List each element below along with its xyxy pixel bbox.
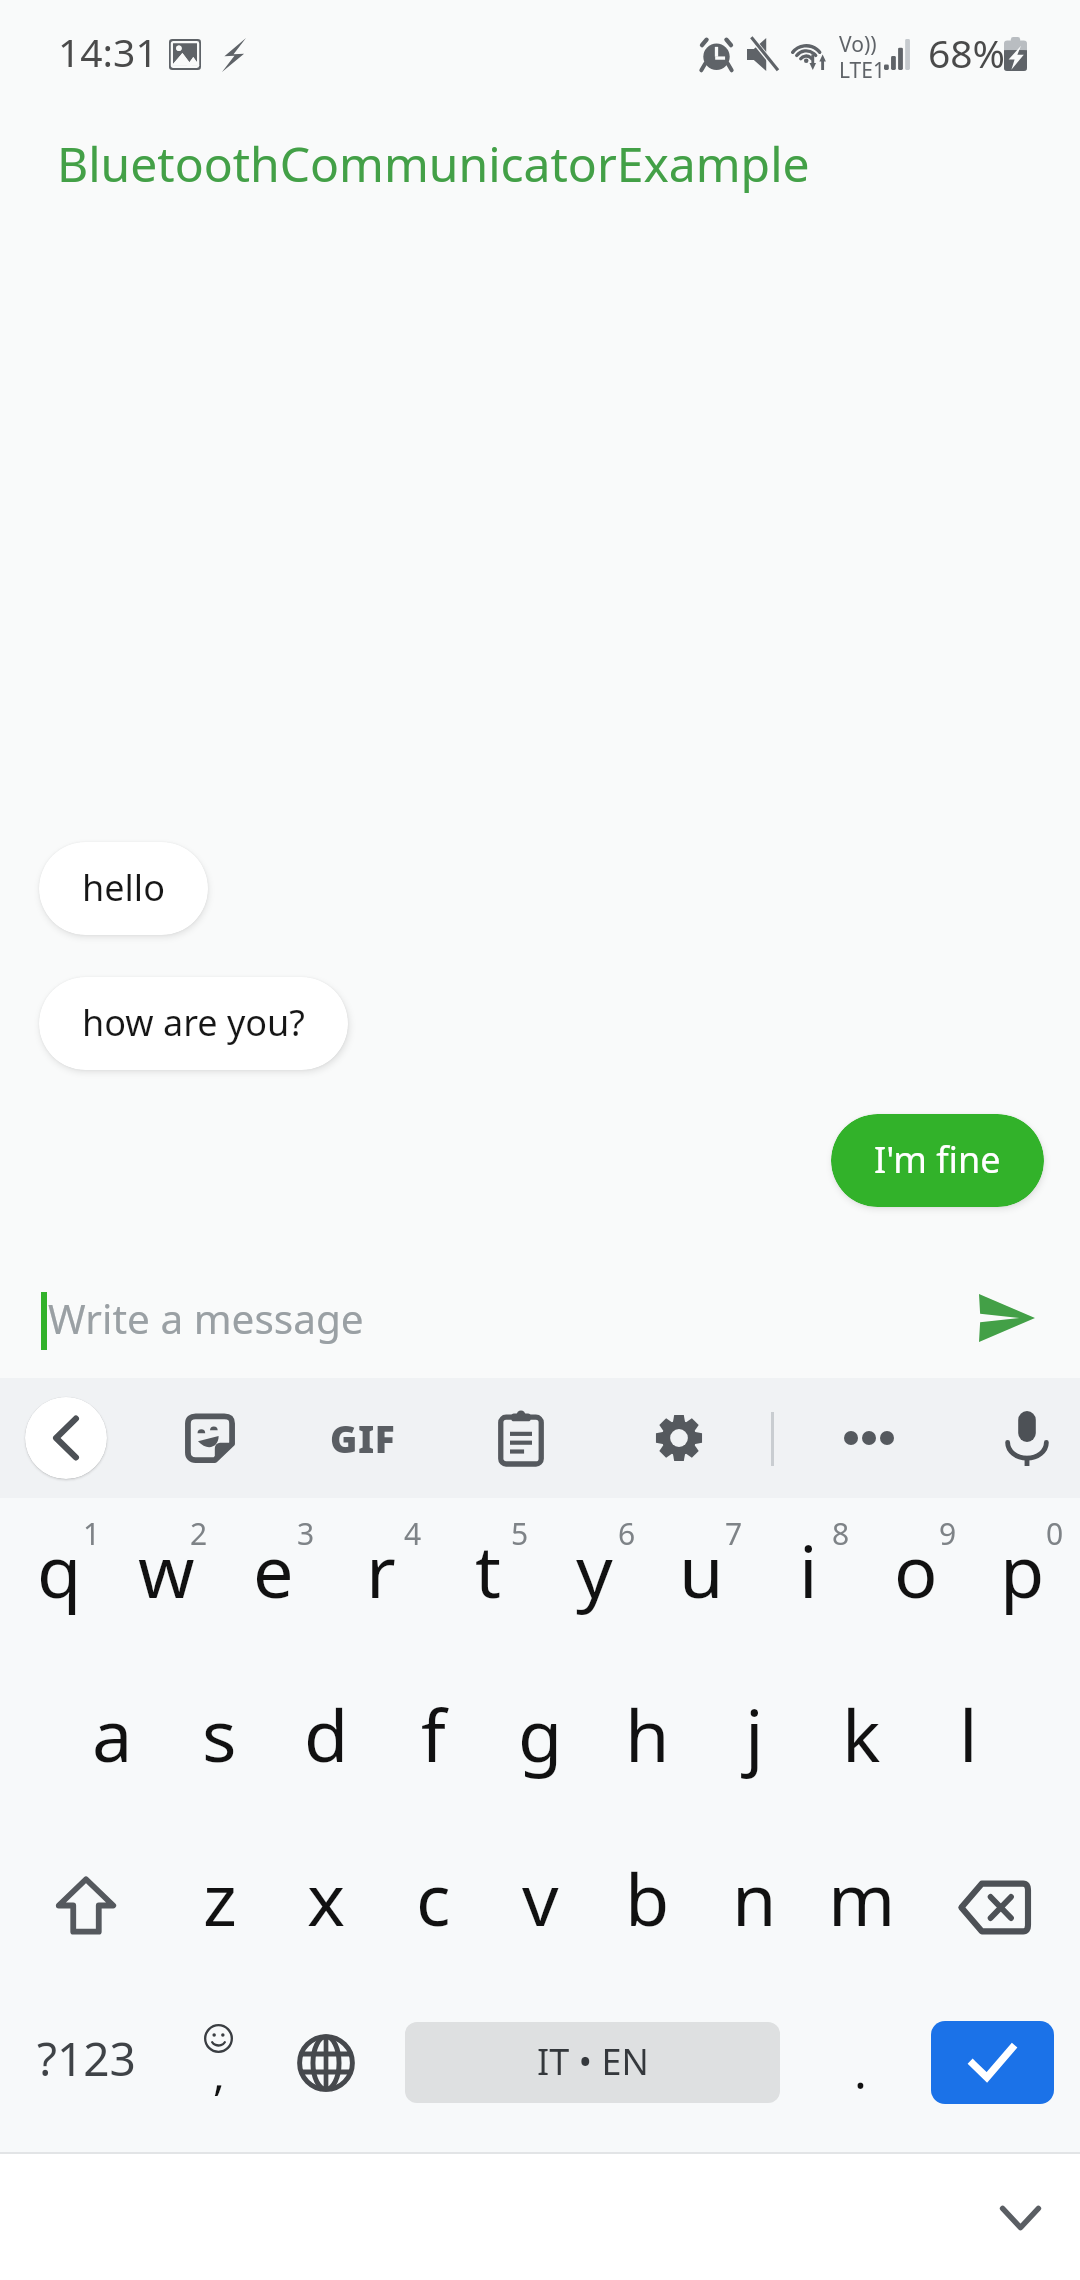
staticText: c bbox=[416, 1849, 451, 1947]
staticText: 8 bbox=[832, 1513, 850, 1554]
button[interactable]: ?123 bbox=[6, 1990, 166, 2154]
button[interactable]: h bbox=[594, 1662, 701, 1826]
button[interactable]: I'm fine bbox=[831, 1114, 1044, 1207]
button[interactable]: t bbox=[434, 1498, 541, 1662]
staticText: l bbox=[959, 1685, 978, 1783]
staticText: 3 bbox=[297, 1513, 315, 1554]
button[interactable]: . bbox=[800, 1990, 920, 2154]
button[interactable]: k bbox=[808, 1662, 915, 1826]
button[interactable]: x bbox=[273, 1826, 380, 1990]
staticText: s bbox=[202, 1685, 237, 1783]
button[interactable]: j bbox=[701, 1662, 808, 1826]
staticText: m bbox=[828, 1849, 896, 1947]
button[interactable]: IT • EN bbox=[405, 2022, 780, 2103]
staticText: 4 bbox=[404, 1513, 422, 1554]
button[interactable]: z bbox=[166, 1826, 273, 1990]
button[interactable]: s bbox=[166, 1662, 273, 1826]
button[interactable]: Settings bbox=[631, 1390, 727, 1486]
staticText: i bbox=[799, 1521, 818, 1619]
button[interactable]: , bbox=[166, 1990, 266, 2154]
button[interactable]: GIF bbox=[315, 1390, 411, 1486]
staticText: 6 bbox=[618, 1513, 636, 1554]
button[interactable]: l bbox=[915, 1662, 1022, 1826]
button[interactable]: Backspace bbox=[914, 1826, 1074, 1990]
staticText: u bbox=[679, 1521, 724, 1619]
staticText: 68% bbox=[928, 26, 1006, 79]
staticText: z bbox=[203, 1849, 237, 1947]
button[interactable]: Back bbox=[25, 1397, 107, 1479]
staticText: IT • EN bbox=[537, 2037, 649, 2086]
button[interactable]: Shift bbox=[6, 1826, 166, 1990]
staticText: x bbox=[307, 1849, 346, 1947]
staticText: a bbox=[92, 1685, 133, 1783]
button[interactable]: b bbox=[594, 1826, 701, 1990]
staticText: Write a message bbox=[48, 1291, 364, 1346]
staticText: o bbox=[894, 1521, 938, 1619]
staticText: 2 bbox=[190, 1513, 208, 1554]
button[interactable]: m bbox=[808, 1826, 915, 1990]
staticText: 5 bbox=[511, 1513, 529, 1554]
staticText: t bbox=[475, 1521, 501, 1619]
staticText: p bbox=[1000, 1521, 1045, 1619]
button[interactable]: a bbox=[59, 1662, 166, 1826]
button[interactable]: Clipboard bbox=[473, 1390, 569, 1486]
button[interactable]: f bbox=[380, 1662, 487, 1826]
button[interactable]: u bbox=[648, 1498, 755, 1662]
staticText: g bbox=[518, 1685, 563, 1783]
button[interactable]: r bbox=[327, 1498, 434, 1662]
button[interactable]: how are you? bbox=[39, 977, 348, 1070]
staticText: j bbox=[745, 1685, 764, 1783]
button[interactable]: o bbox=[862, 1498, 969, 1662]
staticText: . bbox=[854, 2038, 867, 2103]
staticText: 0 bbox=[1046, 1513, 1064, 1554]
button[interactable]: p bbox=[969, 1498, 1076, 1662]
button[interactable]: Send bbox=[947, 1258, 1067, 1378]
staticText: w bbox=[138, 1521, 195, 1619]
staticText: Vo)) bbox=[839, 30, 877, 59]
button[interactable]: v bbox=[487, 1826, 594, 1990]
staticText: hello bbox=[82, 863, 165, 912]
staticText: 1 bbox=[83, 1513, 101, 1554]
staticText: b bbox=[625, 1849, 670, 1947]
button[interactable]: i bbox=[755, 1498, 862, 1662]
button[interactable]: Change language bbox=[266, 1990, 386, 2154]
staticText: f bbox=[421, 1685, 446, 1783]
staticText: r bbox=[366, 1521, 396, 1619]
staticText: q bbox=[37, 1521, 82, 1619]
button[interactable]: w bbox=[113, 1498, 220, 1662]
button[interactable]: c bbox=[380, 1826, 487, 1990]
staticText: ?123 bbox=[37, 2027, 136, 2090]
button[interactable]: q bbox=[6, 1498, 113, 1662]
staticText: I'm fine bbox=[874, 1135, 1001, 1184]
staticText: GIF bbox=[330, 1413, 396, 1463]
staticText: how are you? bbox=[82, 998, 305, 1047]
button[interactable]: n bbox=[701, 1826, 808, 1990]
button[interactable]: hello bbox=[39, 842, 208, 935]
button[interactable]: d bbox=[273, 1662, 380, 1826]
staticText: e bbox=[253, 1521, 294, 1619]
button[interactable]: Enter bbox=[931, 2021, 1054, 2104]
staticText: v bbox=[522, 1849, 559, 1947]
staticText: y bbox=[576, 1521, 613, 1619]
button[interactable]: Voice input bbox=[979, 1390, 1075, 1486]
staticText: BluetoothCommunicatorExample bbox=[57, 131, 810, 196]
button[interactable]: g bbox=[487, 1662, 594, 1826]
staticText: d bbox=[304, 1685, 349, 1783]
staticText: h bbox=[625, 1685, 670, 1783]
staticText: k bbox=[842, 1685, 881, 1783]
button[interactable]: e bbox=[220, 1498, 327, 1662]
staticText: , bbox=[213, 2043, 225, 2103]
button[interactable]: Stickers bbox=[162, 1390, 258, 1486]
button[interactable]: y bbox=[541, 1498, 648, 1662]
staticText: 9 bbox=[939, 1513, 957, 1554]
staticText: n bbox=[732, 1849, 777, 1947]
staticText: LTE1 bbox=[839, 56, 885, 85]
button[interactable]: More options bbox=[821, 1390, 917, 1486]
staticText: 7 bbox=[725, 1513, 743, 1554]
button[interactable]: Hide keyboard bbox=[975, 2173, 1065, 2263]
staticText: 14:31 bbox=[58, 25, 158, 78]
